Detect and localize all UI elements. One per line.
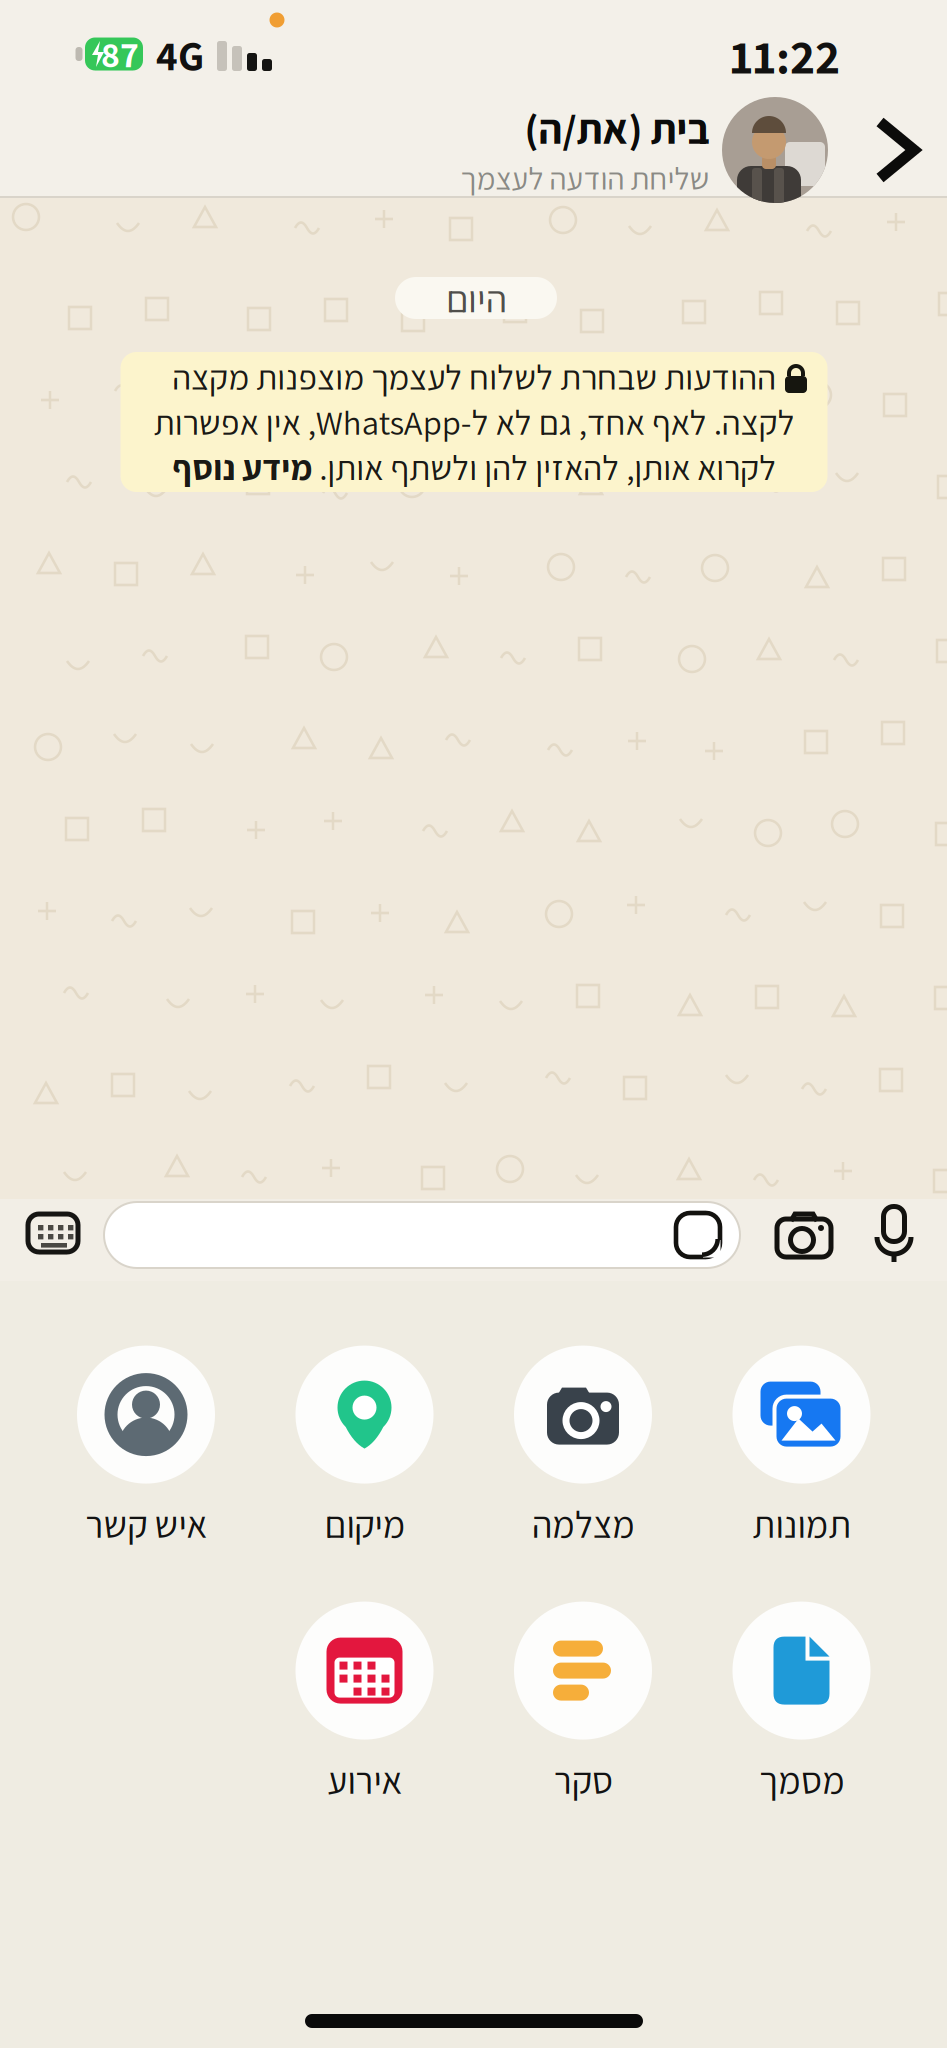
staticText: תמונות — [752, 1500, 851, 1548]
staticText: 11:22 — [730, 25, 840, 87]
staticText: ההודעות שבחרת לשלוח לעצמך מוצפנות מקצה ל… — [153, 355, 794, 489]
staticText: שליחת הודעה לעצמך — [460, 157, 709, 198]
button[interactable]: בית (את/ה) — [268, 97, 828, 203]
staticText: מצלמה — [531, 1500, 634, 1548]
button[interactable]: Poll — [514, 1602, 652, 1804]
staticText: מיקום — [324, 1500, 405, 1548]
button[interactable]: Photos — [732, 1346, 870, 1548]
button[interactable]: Record voice message — [872, 1204, 916, 1262]
button[interactable]: Document — [732, 1602, 870, 1804]
button[interactable]: Camera — [777, 1211, 833, 1257]
staticText: 4G — [156, 28, 204, 82]
button[interactable]: Message field — [104, 1202, 740, 1268]
button[interactable]: Location — [295, 1346, 433, 1548]
button[interactable]: Keyboard — [26, 1213, 80, 1253]
button[interactable]: מידע נוסף — [175, 447, 305, 487]
staticText: איש קשר — [85, 1500, 207, 1548]
staticText: היום — [445, 273, 506, 323]
staticText: אירוע — [327, 1756, 402, 1804]
staticText: 87 — [101, 30, 139, 78]
staticText: מסמך — [758, 1756, 844, 1804]
staticText: סקר — [553, 1756, 612, 1804]
button[interactable]: Event — [295, 1602, 433, 1804]
button[interactable]: Back — [873, 116, 921, 184]
button[interactable]: Contact — [77, 1346, 215, 1548]
staticText: בית (את/ה) — [524, 101, 709, 156]
button[interactable]: Camera — [514, 1346, 652, 1548]
